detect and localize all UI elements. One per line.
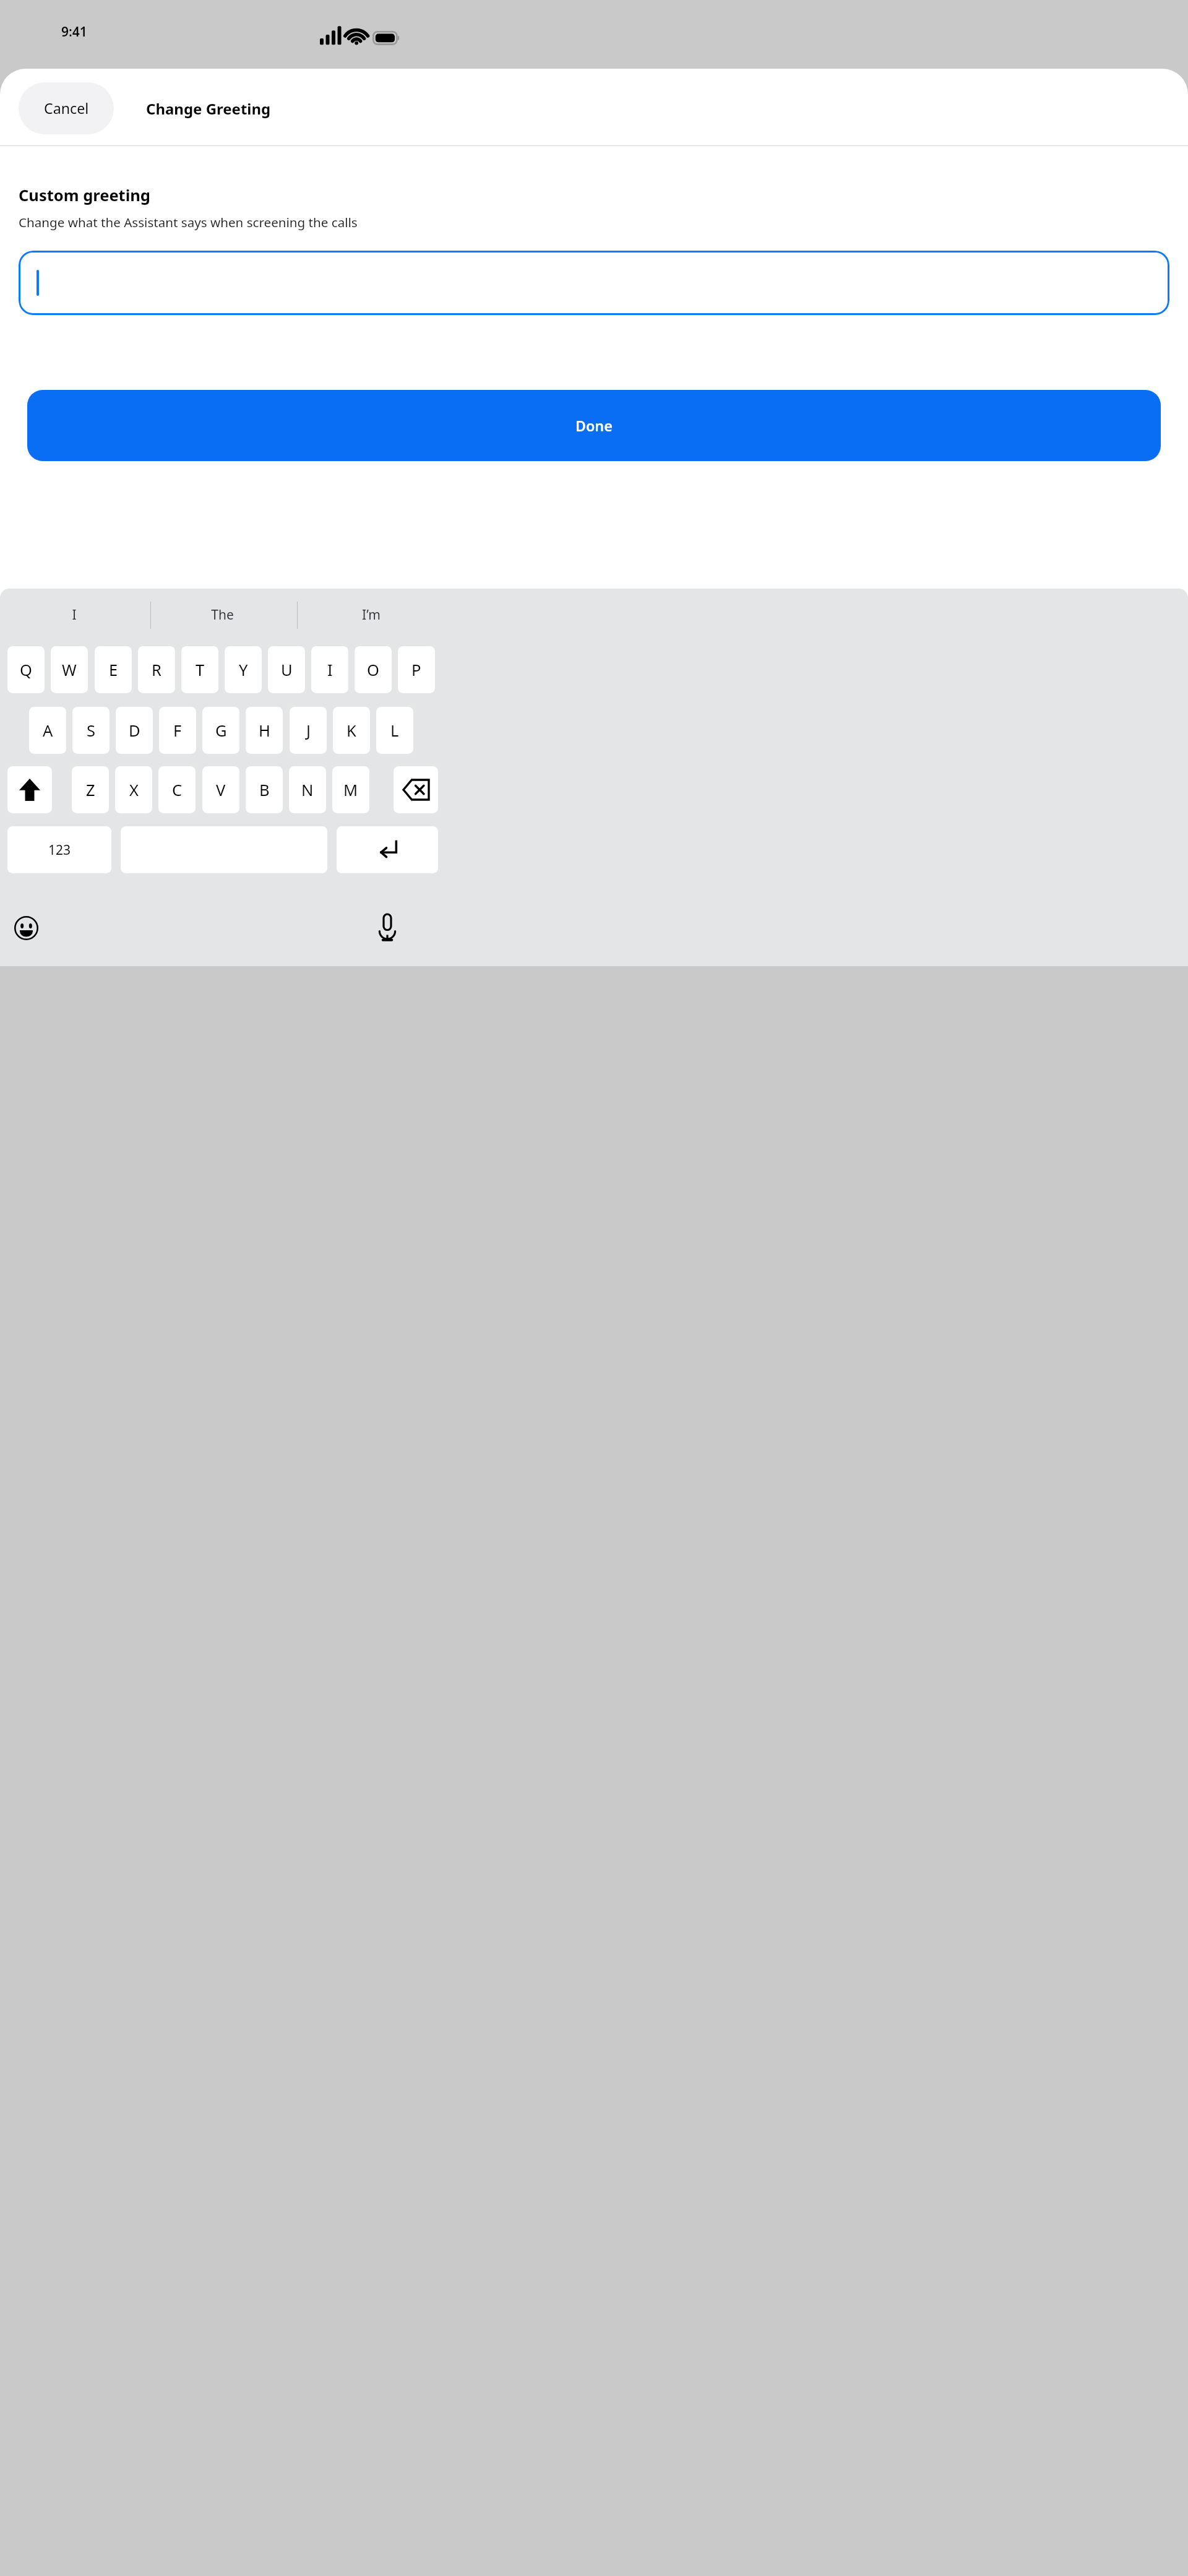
button[interactable]: Emoji [11,913,41,943]
staticText: T [196,659,205,681]
staticText: F [173,720,182,741]
button[interactable]: P [398,646,435,693]
staticText: R [152,659,161,681]
button[interactable]: I’m [320,594,422,635]
button[interactable]: F [159,707,196,754]
staticText: 9:41 [61,23,87,41]
staticText: Cancel [44,98,89,118]
button[interactable]: J [290,707,327,754]
staticText: Change what the Assistant says when scre… [19,214,358,231]
button[interactable]: R [138,646,175,693]
button[interactable]: D [116,707,153,754]
button[interactable]: I [311,646,348,693]
staticText: Custom greeting [19,184,150,206]
button[interactable]: Return [337,826,438,873]
staticText: H [259,720,270,741]
staticText: M [343,779,358,801]
button[interactable]: Z [72,766,109,813]
staticText: N [301,779,314,801]
button[interactable]: Space [121,826,327,873]
staticText: Change Greeting [146,98,271,119]
staticText: E [109,659,118,681]
staticText: S [87,720,95,741]
button[interactable]: W [51,646,88,693]
staticText: J [306,720,311,741]
staticText: O [367,659,379,681]
staticText: X [129,779,139,801]
staticText: G [215,720,227,741]
staticText: I’m [362,606,381,624]
button[interactable]: O [355,646,392,693]
button[interactable]: X [115,766,152,813]
staticText: K [346,720,356,741]
button[interactable]: M [332,766,369,813]
staticText: The [211,606,234,624]
button[interactable]: B [246,766,283,813]
staticText: U [281,659,293,681]
button[interactable]: Q [7,646,45,693]
button[interactable]: The [171,594,273,635]
staticText: Y [239,659,248,681]
button[interactable]: Done [27,390,1161,461]
button[interactable]: T [181,646,218,693]
button[interactable]: Backspace [394,766,438,813]
staticText: V [216,779,226,801]
button[interactable]: E [95,646,132,693]
button[interactable]: A [29,707,66,754]
button[interactable]: C [158,766,196,813]
button[interactable]: K [333,707,370,754]
button[interactable]: Dictate [371,912,403,944]
button[interactable]: Shift [7,766,52,813]
button[interactable]: I [23,594,125,635]
staticText: W [62,659,77,681]
staticText: B [259,779,270,801]
button[interactable]: Y [225,646,262,693]
button[interactable] [19,251,1169,315]
staticText: Done [575,416,613,436]
button[interactable]: 123 [7,826,111,873]
staticText: Z [86,779,95,801]
staticText: L [390,720,399,741]
button[interactable]: Cancel [19,82,114,134]
button[interactable]: H [246,707,283,754]
staticText: Q [20,659,32,681]
button[interactable]: L [376,707,413,754]
button[interactable]: S [72,707,110,754]
staticText: I [327,659,333,681]
staticText: 123 [48,841,71,859]
button[interactable]: N [289,766,326,813]
staticText: I [72,606,77,624]
staticText: P [411,659,421,681]
button[interactable]: U [268,646,305,693]
button[interactable]: G [202,707,239,754]
staticText: C [172,779,183,801]
button[interactable]: V [202,766,239,813]
staticText: D [129,720,140,741]
staticText: A [43,720,53,741]
